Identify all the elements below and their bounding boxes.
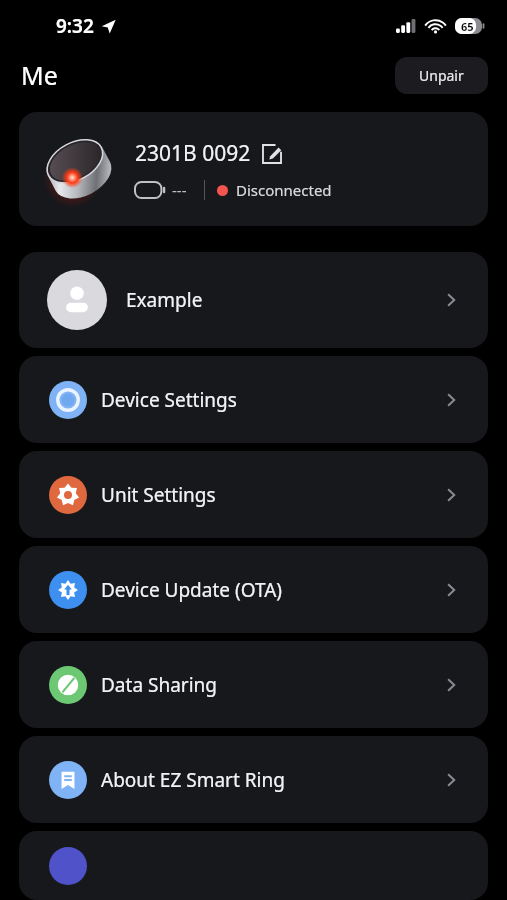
staticText: Device Update (OTA) <box>101 577 283 603</box>
staticText: Me <box>21 58 58 92</box>
button[interactable]: About EZ Smart Ring <box>19 736 488 823</box>
staticText: Unpair <box>419 66 464 85</box>
button[interactable]: Unpair <box>395 57 488 94</box>
staticText: Device Settings <box>101 387 237 413</box>
button[interactable]: Data Sharing <box>19 641 488 728</box>
staticText: Example <box>126 287 203 313</box>
staticText: --- <box>172 180 187 200</box>
staticText: 9:32 <box>56 13 94 39</box>
other: Open <box>442 676 460 694</box>
staticText: Unit Settings <box>101 482 216 508</box>
button[interactable]: Example <box>19 252 488 348</box>
button[interactable]: Device Settings <box>19 356 488 443</box>
button[interactable]: Device Update (OTA) <box>19 546 488 633</box>
staticText: About EZ Smart Ring <box>101 767 285 793</box>
other: Open <box>442 581 460 599</box>
button[interactable]: Rename device <box>261 143 283 165</box>
other: Open <box>442 486 460 504</box>
button[interactable]: 2301B 0092 <box>19 112 488 226</box>
staticText: 2301B 0092 <box>135 139 251 168</box>
other: Open <box>442 771 460 789</box>
button[interactable] <box>19 831 488 900</box>
staticText: Data Sharing <box>101 672 217 698</box>
staticText: 65 <box>461 19 474 34</box>
staticText: Disconnected <box>236 180 332 200</box>
button[interactable]: Unit Settings <box>19 451 488 538</box>
other: Open <box>442 391 460 409</box>
other: Open <box>442 291 460 309</box>
